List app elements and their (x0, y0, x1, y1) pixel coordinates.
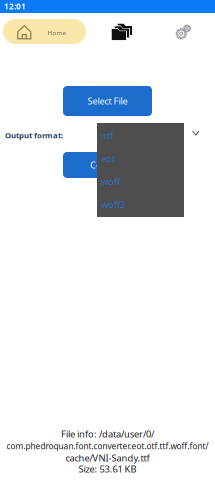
button[interactable]: Select File (63, 86, 152, 116)
staticText: eot (101, 152, 115, 165)
button[interactable]: Files (109, 21, 135, 43)
staticText: cache/VNI-Sandy.ttf (65, 452, 149, 464)
staticText: File info: /data/user/0/ (61, 428, 154, 440)
staticText: Home (47, 28, 65, 37)
staticText: com.phedroquan.font.converter.eot.otf.tt… (6, 440, 208, 452)
staticText: woff (101, 175, 120, 188)
button[interactable]: otf (97, 126, 184, 145)
button[interactable]: woff2 (97, 195, 184, 214)
staticText: Select File (87, 95, 127, 107)
button[interactable]: woff (97, 172, 184, 191)
button[interactable]: eot (97, 149, 184, 168)
staticText: woff2 (101, 198, 125, 211)
staticText: Size: 53.61 KB (78, 463, 136, 475)
staticText: otf (101, 129, 113, 142)
staticText: Convert (90, 159, 125, 171)
staticText: 12:01 (4, 1, 26, 12)
staticText: Output format: (5, 130, 63, 140)
button[interactable]: Convert (63, 152, 152, 178)
button[interactable]: Settings (176, 25, 200, 45)
button[interactable]: Home (3, 19, 86, 44)
